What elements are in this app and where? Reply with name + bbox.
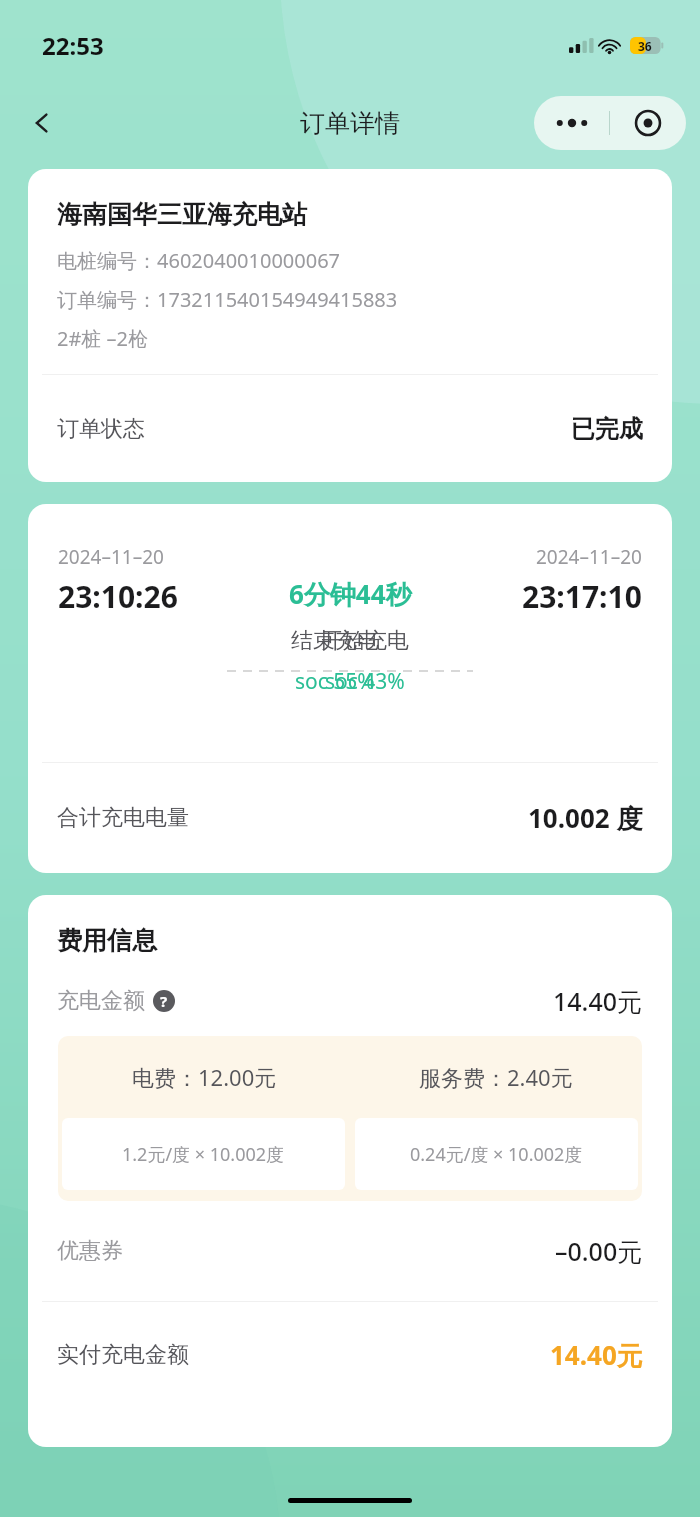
staticText: 0.24元/度 × 10.002度: [410, 1142, 583, 1167]
staticText: 实付充电金额: [57, 1341, 189, 1369]
staticText: 合计充电电量: [57, 804, 189, 832]
button[interactable]: Close: [610, 96, 686, 150]
button[interactable]: 订单状态: [28, 375, 672, 482]
staticText: 36: [638, 38, 652, 54]
staticText: 电桩编号：4602040010000067: [57, 247, 341, 274]
staticText: 订单编号：173211540154949415883: [57, 286, 398, 313]
staticText: 充电金额: [57, 987, 145, 1015]
staticText: 订单详情: [300, 108, 400, 139]
staticText: 优惠券: [57, 1237, 123, 1265]
staticText: 订单状态: [57, 415, 145, 443]
staticText: 6分钟44秒: [289, 576, 412, 612]
staticText: 开始充电: [321, 627, 409, 655]
staticText: 2#桩 –2枪: [57, 325, 148, 352]
staticText: ?: [160, 991, 168, 1011]
button[interactable]: Back: [18, 99, 66, 147]
button[interactable]: 充电金额: [28, 984, 672, 1018]
button[interactable]: 实付充电金额: [28, 1302, 672, 1407]
button[interactable]: 优惠券: [28, 1201, 672, 1301]
staticText: soc 43%: [325, 667, 405, 696]
staticText: 费用信息: [57, 925, 157, 956]
staticText: 已完成: [571, 414, 643, 444]
staticText: 1.2元/度 × 10.002度: [122, 1142, 285, 1167]
staticText: 23:10:26: [58, 576, 178, 617]
staticText: 2024–11–20: [58, 544, 164, 570]
staticText: 22:53: [42, 29, 104, 62]
staticText: 14.40元: [550, 1337, 643, 1373]
staticText: 23:17:10: [522, 576, 642, 617]
staticText: 14.40元: [553, 984, 643, 1018]
staticText: 电费：12.00元: [132, 1062, 277, 1092]
button[interactable]: 合计充电电量: [28, 763, 672, 873]
button[interactable]: More: [534, 96, 609, 150]
staticText: 2024–11–20: [536, 544, 642, 570]
staticText: 10.002 度: [528, 800, 643, 836]
staticText: 服务费：2.40元: [419, 1062, 573, 1092]
staticText: 结束充电: [291, 627, 379, 655]
staticText: –0.00元: [555, 1234, 643, 1268]
staticText: 海南国华三亚海充电站: [57, 199, 307, 230]
staticText: soc 55%: [295, 667, 375, 696]
